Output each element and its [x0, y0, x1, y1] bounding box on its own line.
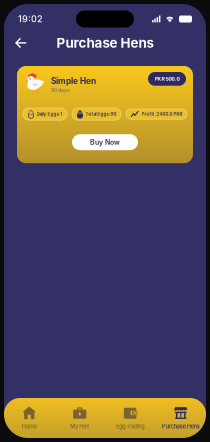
- staticText: My Hen: [70, 423, 89, 430]
- staticText: 90 days: [51, 87, 70, 93]
- staticText: Profit: 2400.0 PKR: [141, 111, 182, 117]
- staticText: PKR 500.0: [154, 76, 179, 82]
- button[interactable]: Back: [10, 32, 32, 54]
- button[interactable]: My Hen: [54, 398, 105, 438]
- staticText: Daily Eggs: 1: [36, 111, 62, 117]
- staticText: Egg Trading: [116, 423, 144, 430]
- button[interactable]: Purchase Hens: [155, 398, 206, 438]
- button[interactable]: Home: [4, 398, 54, 438]
- staticText: Home: [22, 423, 37, 430]
- button[interactable]: Buy Now: [72, 134, 138, 150]
- staticText: Simple Hen: [51, 76, 96, 86]
- staticText: 19:02: [18, 13, 43, 24]
- staticText: Total Eggs: 90: [85, 111, 116, 117]
- staticText: Buy Now: [90, 138, 120, 146]
- staticText: Purchase Hens: [56, 35, 153, 51]
- button[interactable]: Egg Trading: [105, 398, 155, 438]
- staticText: Purchase Hens: [162, 423, 200, 430]
